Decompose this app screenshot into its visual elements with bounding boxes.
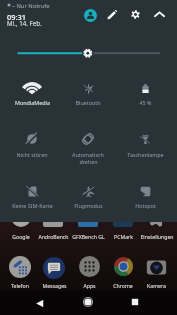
button[interactable]: Brightness [10,44,167,63]
button[interactable]: Einstellungen [147,207,167,227]
button[interactable] [117,72,173,116]
button[interactable]: Kamera [146,257,167,278]
button[interactable] [60,175,116,219]
staticText: Hotspot [135,202,156,209]
button[interactable] [60,72,116,116]
button[interactable]: Collapse [148,3,170,25]
button[interactable]: Settings [124,3,146,25]
staticText: Keine SIM-Karte [12,202,53,209]
staticText: Kamera [147,282,166,289]
button[interactable]: Back [29,293,49,313]
button[interactable] [117,175,173,219]
staticText: Mi., 14. Feb. [7,19,42,27]
staticText: Taschenlampe [127,151,164,158]
button[interactable] [4,72,60,116]
staticText: 45 % [139,99,152,106]
staticText: Chrome [113,282,133,289]
button[interactable]: Home [78,292,98,312]
staticText: Telefon [11,282,29,289]
staticText: Apps [83,282,96,289]
button[interactable]: Recents [125,292,145,312]
staticText: AndroBench [38,233,69,240]
button[interactable] [117,123,173,167]
staticText: Flugmodus [74,202,103,209]
button[interactable]: Apps [79,256,100,277]
staticText: Messages [42,282,67,289]
button[interactable]: Edit [101,3,123,25]
button[interactable]: Telefon [9,256,31,278]
button[interactable] [4,175,60,219]
staticText: – Nur Notrufe [12,2,50,10]
button[interactable]: Google [11,207,31,227]
button[interactable] [60,123,116,167]
button[interactable]: GFXBench GL [78,207,98,227]
staticText: 09:31 [7,12,26,22]
button[interactable]: AndroBench [43,207,63,227]
staticText: Automatisch [72,151,104,158]
button[interactable]: Messages [43,257,65,279]
staticText: drehen [79,158,98,165]
staticText: PCMark [114,233,133,240]
button[interactable]: PCMark [113,207,133,227]
staticText: Einstellungen [140,233,174,240]
staticText: Bluetooth [75,99,101,106]
staticText: Nicht stören [16,151,48,158]
staticText: GFXBench GL [72,233,105,240]
button[interactable] [4,123,60,167]
staticText: MondiaMedia [15,99,50,106]
button[interactable]: Chrome [114,257,133,276]
staticText: Google [12,233,30,240]
button[interactable]: Profile [79,4,101,26]
